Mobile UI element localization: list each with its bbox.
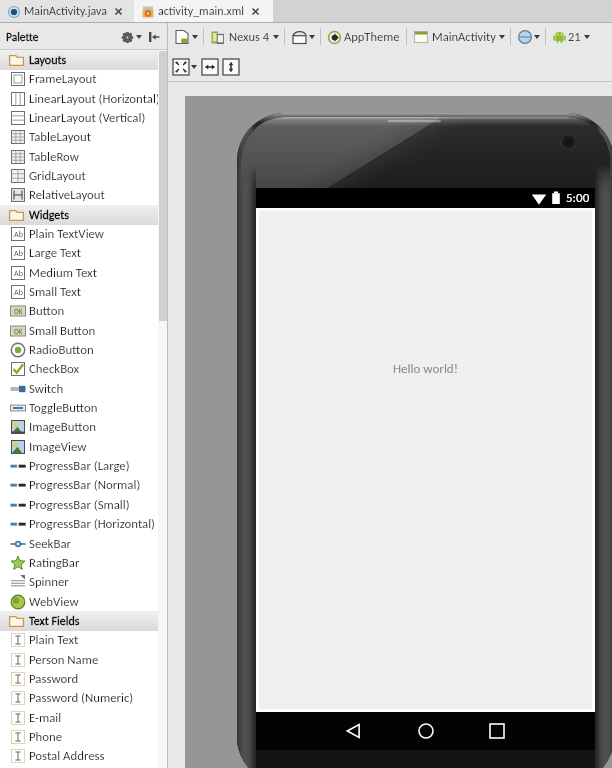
button[interactable]: MainActivity (432, 29, 496, 44)
staticText: TableRow (29, 149, 79, 165)
button[interactable]: OK (0, 321, 168, 340)
staticText: TableLayout (29, 129, 92, 145)
button[interactable]: ImageView (0, 437, 168, 456)
button[interactable]: Back (341, 718, 367, 744)
button[interactable]: FrameLayout (0, 69, 168, 88)
button[interactable]: SeekBar (0, 534, 168, 553)
button[interactable]: ToggleButton (0, 398, 168, 417)
button[interactable]: activity_main.xml (134, 0, 273, 23)
staticText: ProgressBar (Normal) (29, 477, 141, 493)
button[interactable]: Recent apps (484, 718, 510, 744)
button[interactable]: Spinner (0, 572, 168, 591)
staticText: FrameLayout (29, 71, 97, 87)
other: Close tab (114, 7, 123, 16)
button[interactable]: OK (0, 301, 168, 320)
button[interactable]: API level (552, 29, 567, 44)
staticText: RadioButton (29, 342, 94, 358)
button[interactable]: TableRow (0, 147, 168, 166)
button[interactable]: LinearLayout (Vertical) (0, 108, 168, 127)
button[interactable]: Zoom to fit (173, 59, 189, 75)
staticText: Ab (14, 287, 23, 297)
button[interactable]: Phone (0, 727, 168, 746)
button[interactable]: Collapse panel (146, 29, 162, 45)
button[interactable]: ImageButton (0, 417, 168, 436)
button[interactable]: CheckBox (0, 359, 168, 378)
button[interactable]: Locale (517, 29, 533, 45)
button[interactable]: MainActivity.java (0, 0, 134, 23)
staticText: Switch (29, 381, 64, 397)
staticText: ProgressBar (Horizontal) (29, 516, 155, 532)
button[interactable]: Orientation (290, 28, 308, 46)
staticText: Plain TextView (29, 226, 105, 242)
button[interactable]: ProgressBar (Small) (0, 495, 168, 514)
staticText: Ab (14, 248, 23, 258)
staticText: WebView (29, 594, 79, 610)
button[interactable]: Postal Address (0, 746, 168, 765)
staticText: 5:00 (566, 190, 590, 206)
button[interactable]: Ab (0, 243, 168, 262)
button[interactable]: Nexus 4 (229, 29, 270, 44)
staticText: ProgressBar (Small) (29, 497, 130, 513)
staticText: Ab (14, 229, 23, 239)
button[interactable]: Ab (0, 263, 168, 282)
staticText: Button (29, 303, 65, 319)
staticText: Widgets (29, 208, 69, 223)
button[interactable]: LinearLayout (Horizontal) (0, 89, 168, 108)
staticText: LinearLayout (Horizontal) (29, 91, 160, 107)
button[interactable]: 21 (568, 29, 581, 44)
button[interactable]: Home (413, 718, 439, 744)
staticText: RelativeLayout (29, 187, 105, 203)
button[interactable]: Activity (413, 29, 429, 45)
button[interactable]: Zoom to fit height (223, 59, 239, 75)
staticText: Postal Address (29, 748, 105, 764)
button[interactable]: Palette settings (119, 29, 135, 45)
staticText: Hello world! (393, 361, 458, 377)
staticText: MainActivity.java (24, 4, 108, 19)
button[interactable]: Multiline Text (0, 766, 168, 768)
other: Close tab (251, 7, 260, 16)
staticText: Person Name (29, 652, 99, 668)
button[interactable]: Zoom to fit width (202, 59, 218, 75)
staticText: Password (Numeric) (29, 690, 134, 706)
staticText: ImageView (29, 439, 87, 455)
staticText: Small Button (29, 323, 96, 339)
button[interactable]: Device (209, 29, 225, 45)
staticText: Small Text (29, 284, 82, 300)
button[interactable]: Password (Numeric) (0, 688, 168, 707)
button[interactable]: ProgressBar (Normal) (0, 475, 168, 494)
button[interactable]: Text Fields (0, 611, 168, 631)
staticText: ToggleButton (29, 400, 98, 416)
button[interactable]: TableLayout (0, 127, 168, 146)
staticText: OK (14, 307, 23, 316)
button[interactable]: WebView (0, 592, 168, 611)
staticText: Medium Text (29, 265, 97, 281)
button[interactable]: RadioButton (0, 340, 168, 359)
button[interactable]: Layouts (0, 50, 168, 70)
button[interactable]: Ab (0, 224, 168, 243)
button[interactable]: Plain Text (0, 630, 168, 649)
button[interactable]: ProgressBar (Horizontal) (0, 514, 168, 533)
button[interactable]: GridLayout (0, 166, 168, 185)
button[interactable]: Switch (0, 379, 168, 398)
staticText: ImageButton (29, 419, 97, 435)
staticText: Spinner (29, 574, 69, 590)
button[interactable]: ProgressBar (Large) (0, 456, 168, 475)
staticText: Large Text (29, 245, 82, 261)
staticText: Text Fields (29, 614, 80, 629)
button[interactable]: Password (0, 669, 168, 688)
staticText: E-mail (29, 710, 62, 726)
staticText: Palette (6, 30, 39, 44)
staticText: Layouts (29, 53, 67, 68)
staticText: Plain Text (29, 632, 79, 648)
button[interactable]: Theme (327, 30, 341, 44)
button[interactable]: Person Name (0, 650, 168, 669)
button[interactable]: Ab (0, 282, 168, 301)
staticText: OK (14, 327, 23, 336)
button[interactable]: E-mail (0, 708, 168, 727)
button[interactable]: RelativeLayout (0, 185, 168, 204)
button[interactable]: Widgets (0, 205, 168, 225)
staticText: RatingBar (29, 555, 80, 571)
button[interactable]: New layout (173, 28, 191, 46)
button[interactable]: RatingBar (0, 553, 168, 572)
button[interactable]: AppTheme (344, 29, 400, 44)
